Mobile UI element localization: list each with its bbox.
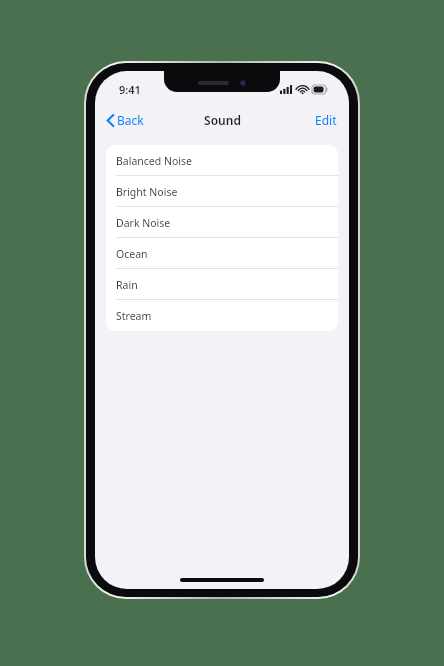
button[interactable]: Edit	[305, 107, 349, 133]
staticText: Back	[117, 112, 144, 128]
other: Battery	[312, 85, 328, 94]
other: Wi-Fi	[297, 85, 308, 94]
staticText: Dark Noise	[116, 216, 171, 230]
staticText: Ocean	[116, 247, 148, 261]
staticText: Sound	[204, 112, 241, 128]
button[interactable]: Bright Noise	[106, 176, 338, 207]
other: Cellular signal	[280, 85, 293, 94]
button[interactable]: Ocean	[106, 238, 338, 269]
staticText: Stream	[116, 309, 152, 323]
button[interactable]: Dark Noise	[106, 207, 338, 238]
staticText: 9:41	[119, 82, 141, 97]
button[interactable]: Rain	[106, 269, 338, 300]
button[interactable]: Balanced Noise	[106, 145, 338, 176]
staticText: Bright Noise	[116, 185, 178, 199]
staticText: Rain	[116, 278, 138, 292]
staticText: Balanced Noise	[116, 154, 192, 168]
button[interactable]: Back	[95, 107, 152, 133]
button[interactable]: Stream	[106, 300, 338, 331]
